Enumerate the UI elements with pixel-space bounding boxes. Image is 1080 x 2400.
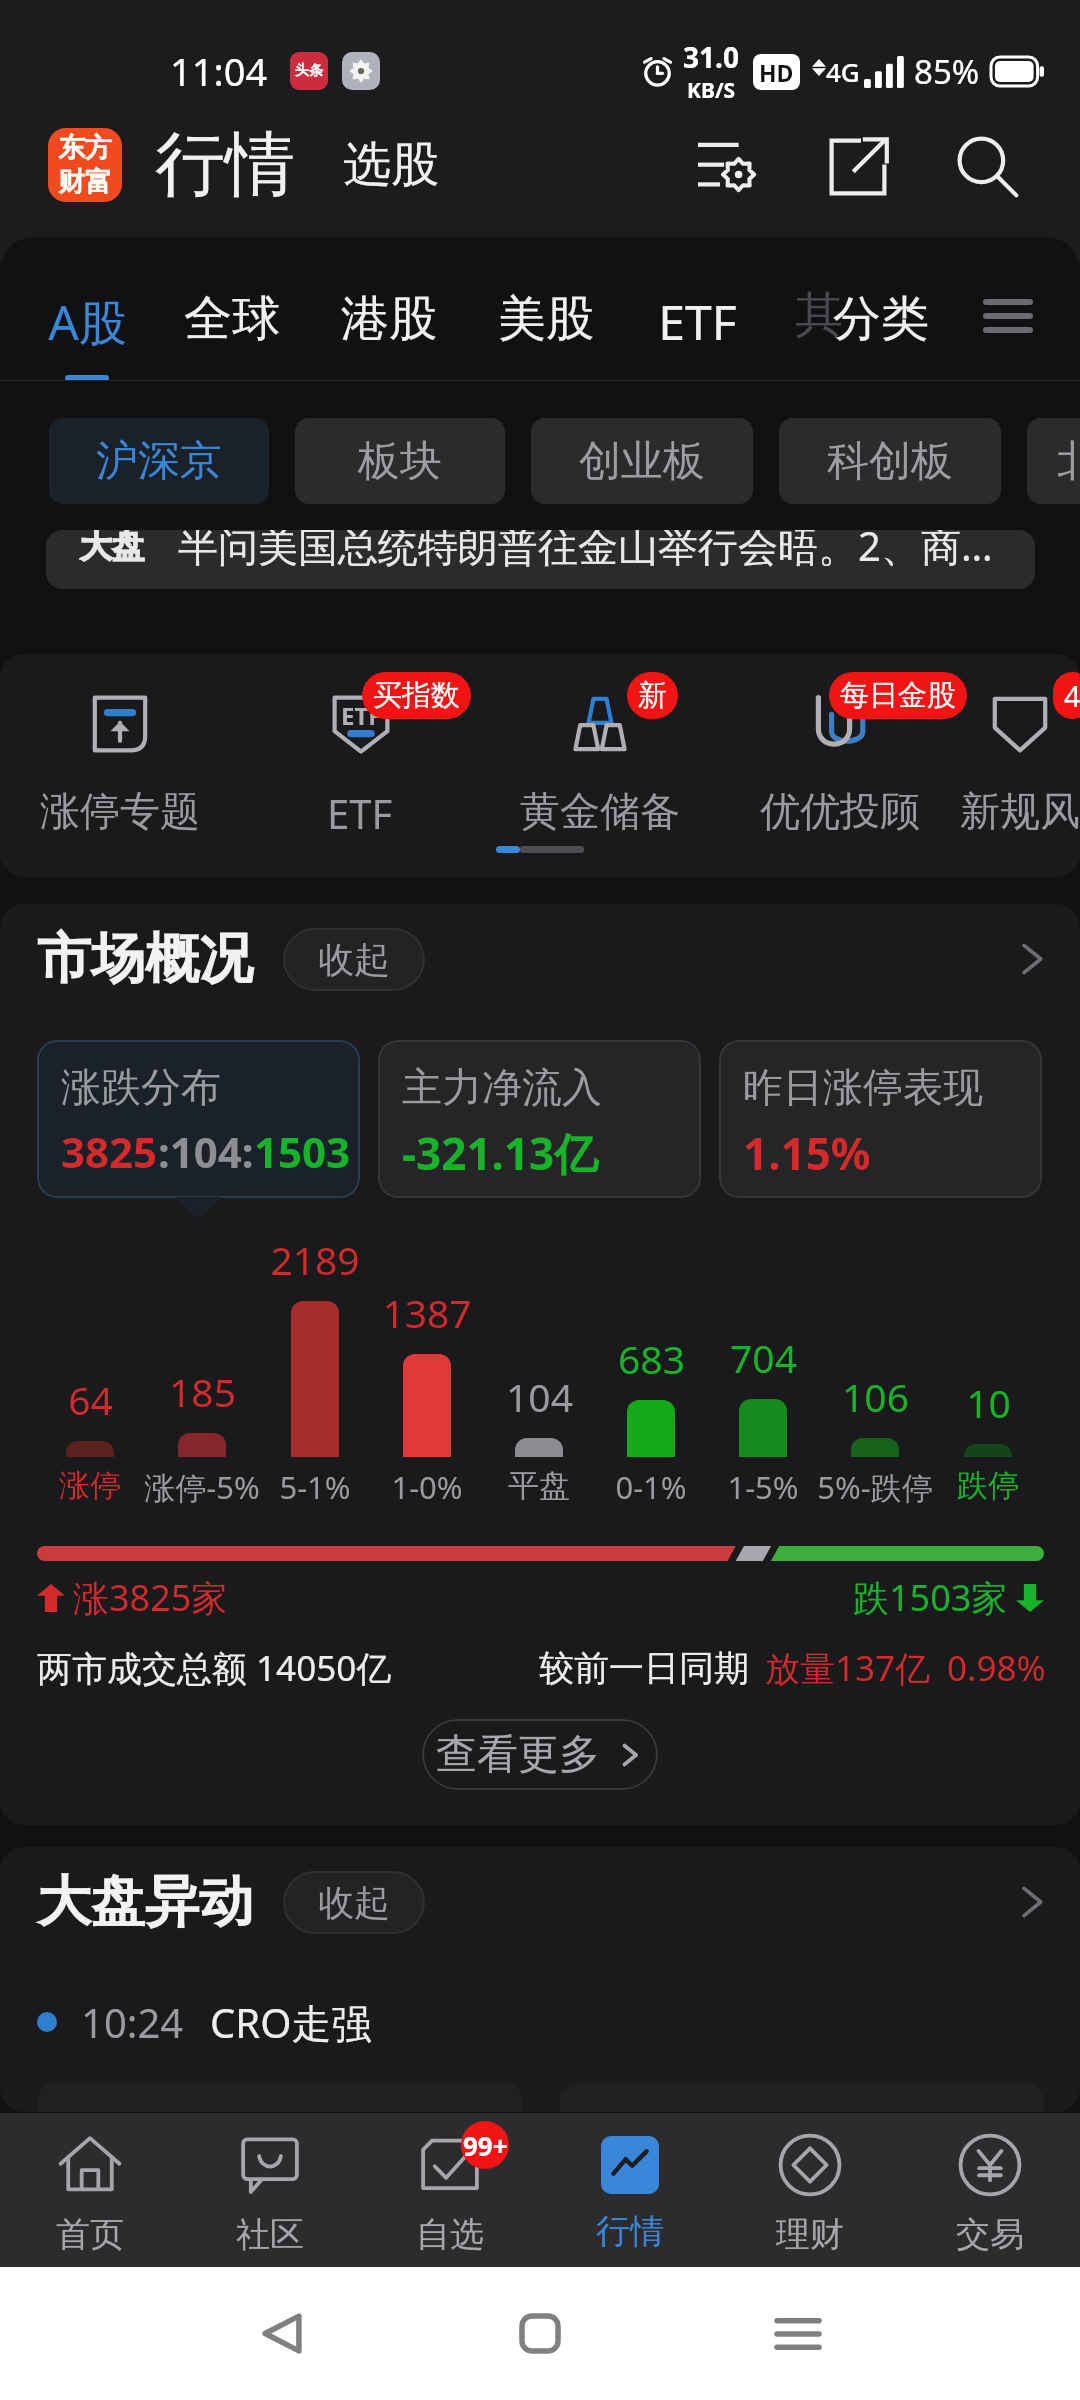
button[interactable]: Search: [940, 119, 1036, 215]
button[interactable]: 社区: [180, 2113, 360, 2267]
button[interactable]: Filter settings: [679, 119, 775, 215]
staticText: 5%-跌停: [817, 1466, 933, 1508]
staticText: ETF: [658, 289, 737, 354]
button[interactable]: 涨跌分布: [37, 1040, 360, 1198]
button[interactable]: 查看更多: [422, 1719, 658, 1790]
staticText: 1-5%: [727, 1466, 799, 1508]
button[interactable]: 99+: [360, 2113, 540, 2267]
staticText: 首页: [56, 2213, 124, 2256]
button[interactable]: 创业板: [531, 418, 753, 504]
staticText: 1.15%: [743, 1123, 871, 1183]
button[interactable]: ETF: [240, 654, 480, 834]
staticText: 板块: [358, 435, 442, 488]
staticText: 跌停: [957, 1466, 1019, 1505]
staticText: 4G: [826, 54, 860, 89]
staticText: 自选: [416, 2213, 484, 2256]
staticText: 31.0: [683, 38, 739, 76]
staticText: 跌1503家: [853, 1573, 1008, 1622]
staticText: 10: [966, 1376, 1011, 1429]
staticText: 主力净流入: [402, 1062, 602, 1112]
button[interactable]: 港股: [341, 237, 437, 380]
staticText: 港股: [341, 289, 437, 349]
button[interactable]: 每日金股: [720, 654, 960, 834]
button[interactable]: Recents: [669, 2267, 927, 2400]
button[interactable]: 昨日涨停表现: [719, 1040, 1042, 1198]
staticText: 185: [169, 1365, 236, 1418]
staticText: 放量137亿: [765, 1644, 931, 1692]
staticText: 1503: [254, 1123, 351, 1180]
staticText: 头条: [295, 62, 323, 80]
button[interactable]: 板块: [295, 418, 505, 504]
button[interactable]: 美股: [498, 237, 594, 380]
staticText: 查看更多: [436, 1729, 600, 1781]
staticText: 理财: [776, 2213, 844, 2256]
button[interactable]: A股: [39, 237, 135, 380]
staticText: 3825: [61, 1123, 158, 1180]
button[interactable]: More tabs: [986, 299, 1030, 333]
button[interactable]: 10:24: [37, 1987, 1080, 2057]
staticText: 行情: [596, 2210, 664, 2253]
staticText: 1-0%: [391, 1466, 463, 1508]
staticText: 涨停: [59, 1466, 121, 1505]
staticText: 每日金股: [840, 677, 956, 714]
button[interactable]: 涨停专题: [0, 654, 240, 834]
staticText: 平盘: [508, 1466, 570, 1505]
staticText: 北: [1057, 435, 1080, 488]
button[interactable]: Home: [411, 2267, 669, 2400]
button[interactable]: 北: [1027, 418, 1080, 504]
staticText: ETF: [327, 786, 393, 834]
staticText: 沪深京: [96, 435, 222, 488]
staticText: 1387: [382, 1286, 472, 1339]
staticText: 99+: [463, 2128, 508, 2163]
staticText: HD: [759, 57, 794, 88]
button[interactable]: 新: [480, 654, 720, 834]
staticText: -321.13亿: [402, 1123, 599, 1183]
button[interactable]: Back: [153, 2267, 411, 2400]
staticText: 买指数: [373, 677, 460, 714]
staticText: A股: [48, 289, 127, 355]
staticText: 大盘: [80, 530, 144, 566]
staticText: 64: [68, 1373, 113, 1426]
staticText: 东方: [58, 131, 112, 165]
button[interactable]: ETF: [649, 237, 745, 380]
staticText: ETF: [341, 699, 382, 732]
staticText: 社区: [236, 2213, 304, 2256]
staticText: 半问美国总统特朗普往金山举行会晤。2、商…: [178, 530, 993, 573]
button[interactable]: 首页: [0, 2113, 180, 2267]
button[interactable]: 科创板: [779, 418, 1001, 504]
staticText: 收起: [318, 1880, 390, 1925]
staticText: 行情: [155, 121, 295, 209]
staticText: 10:24: [81, 1995, 184, 2049]
staticText: 黄金储备: [520, 786, 680, 834]
button[interactable]: 理财: [720, 2113, 900, 2267]
staticText: 较前一日同期: [539, 1646, 749, 1690]
staticText: 5-1%: [279, 1466, 351, 1508]
staticText: 市场概况: [37, 925, 253, 993]
staticText: 新规风: [960, 786, 1080, 834]
button[interactable]: 大盘异动: [0, 1847, 1080, 1957]
staticText: 11:04: [170, 45, 268, 97]
staticText: 美股: [498, 289, 594, 349]
button[interactable]: 分类: [833, 237, 929, 380]
button[interactable]: 全球: [184, 237, 280, 380]
button[interactable]: 4: [960, 654, 1080, 834]
staticText: 全球: [184, 289, 280, 349]
staticText: 4: [1064, 676, 1080, 715]
staticText: 2189: [270, 1233, 360, 1286]
staticText: 106: [842, 1370, 909, 1423]
staticText: 财富: [58, 165, 112, 199]
button[interactable]: 市场概况: [0, 904, 1080, 1014]
button[interactable]: 行情: [540, 2113, 720, 2267]
staticText: 0-1%: [615, 1466, 687, 1508]
button[interactable]: 交易: [900, 2113, 1080, 2267]
staticText: 涨停专题: [40, 786, 200, 834]
staticText: 大盘异动: [37, 1868, 253, 1936]
button[interactable]: 沪深京: [49, 418, 269, 504]
staticText: 交易: [956, 2213, 1024, 2256]
button[interactable]: 主力净流入: [378, 1040, 701, 1198]
staticText: 85%: [914, 49, 980, 94]
staticText: 104: [506, 1370, 573, 1423]
button[interactable]: Share: [810, 119, 906, 215]
staticText: 0.98%: [947, 1644, 1046, 1692]
button[interactable]: 大盘: [46, 530, 1035, 589]
